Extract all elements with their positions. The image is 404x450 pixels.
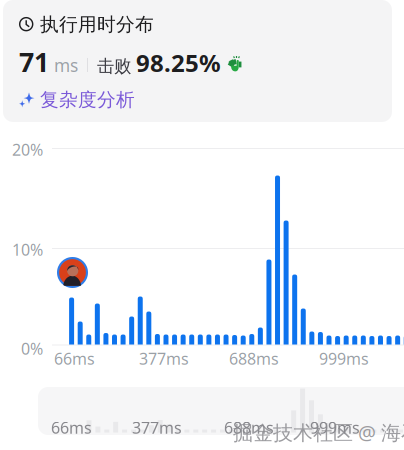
staticText: 999ms (319, 348, 369, 369)
staticText: 击败 (97, 56, 136, 77)
staticText: 377ms (132, 417, 182, 438)
button[interactable]: 复杂度分析 (19, 88, 135, 111)
staticText: 20% (12, 139, 43, 160)
staticText: 66ms (54, 348, 95, 369)
staticText: 999ms (310, 417, 360, 438)
staticText: 98.25% (136, 47, 221, 79)
staticText: 71 (19, 44, 49, 79)
staticText: ms (49, 54, 78, 77)
staticText: 688ms (224, 417, 274, 438)
staticText: 10% (12, 239, 43, 260)
staticText: 688ms (229, 348, 279, 369)
staticText: 0% (21, 338, 43, 359)
staticText: 377ms (139, 348, 189, 369)
staticText: 掘金技术社区 @ 海石 (233, 419, 404, 446)
staticText: 执行用时分布 (40, 13, 154, 36)
staticText: 66ms (51, 417, 92, 438)
staticText: 复杂度分析 (40, 88, 135, 111)
